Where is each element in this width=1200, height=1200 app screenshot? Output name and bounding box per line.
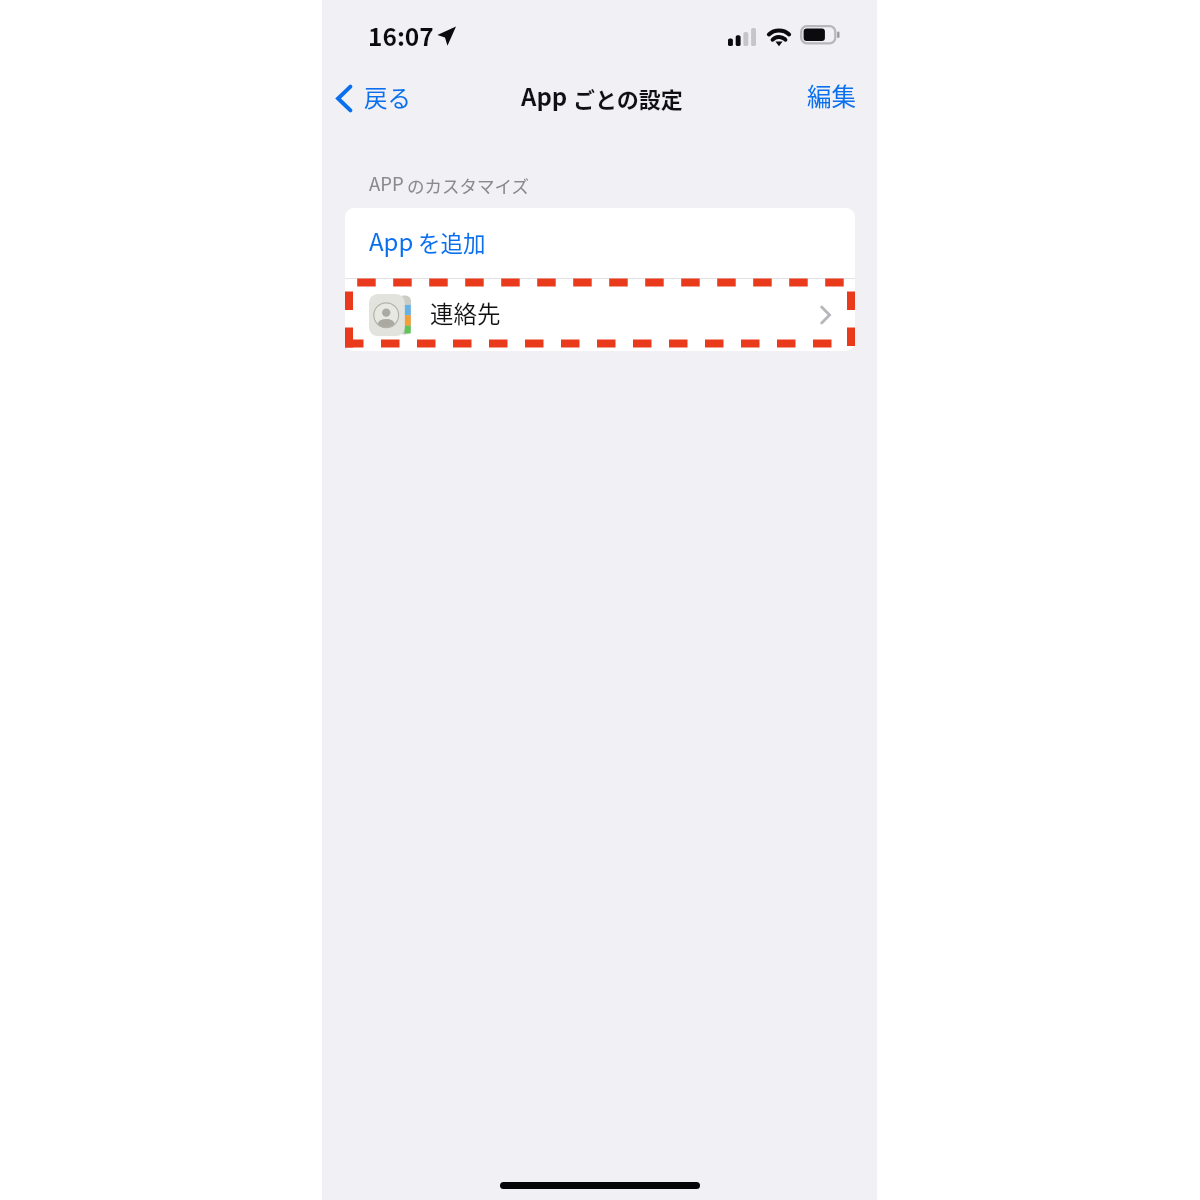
staticText: ごとの設定	[573, 82, 683, 114]
button[interactable]: 連絡先 app icon	[345, 279, 855, 351]
staticText: のカスタマイズ	[407, 173, 529, 198]
other: 連絡先 app icon	[369, 294, 411, 336]
button[interactable]: 編集	[799, 74, 864, 117]
staticText: App	[521, 78, 568, 113]
button[interactable]: App	[345, 208, 855, 278]
staticText: を追加	[418, 226, 486, 259]
staticText: App	[369, 223, 414, 258]
button[interactable]: 戻る	[331, 77, 421, 119]
other: Open	[820, 306, 831, 324]
staticText: 戻る	[364, 80, 411, 114]
staticText: 16:07	[368, 18, 434, 53]
staticText: 編集	[807, 78, 856, 113]
staticText: 連絡先	[430, 296, 501, 330]
staticText: APP	[369, 170, 404, 197]
